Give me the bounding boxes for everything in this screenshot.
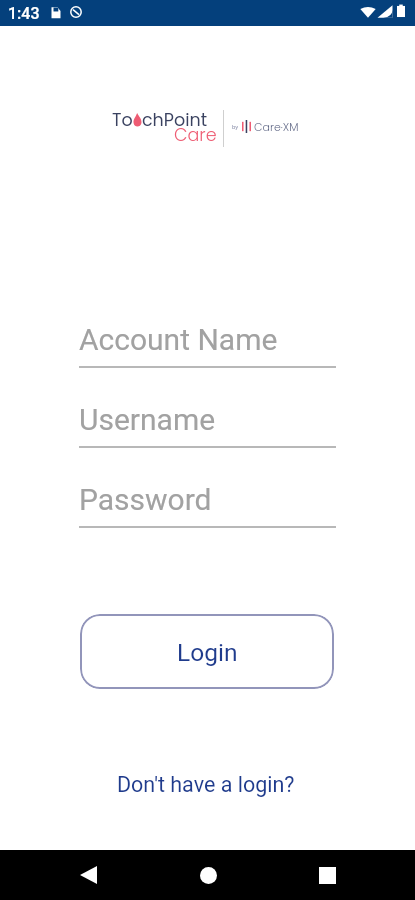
button[interactable]: Login [80, 614, 334, 689]
button[interactable]: Don't have a login? [107, 766, 305, 803]
button[interactable]: Back [64, 851, 112, 899]
button[interactable]: Home [184, 851, 232, 899]
staticText: Care·XM [254, 119, 299, 134]
staticText: by [232, 123, 239, 130]
staticText: Care [174, 123, 217, 148]
staticText: Login [177, 638, 238, 667]
staticText: 1:43 [8, 4, 40, 23]
staticText: Account Name [79, 322, 278, 357]
button[interactable]: Recent apps [303, 851, 351, 899]
staticText: Username [79, 402, 216, 437]
staticText: chPoint [142, 108, 208, 133]
staticText: Don't have a login? [117, 772, 295, 797]
staticText: Password [79, 482, 212, 517]
staticText: To [112, 108, 133, 133]
